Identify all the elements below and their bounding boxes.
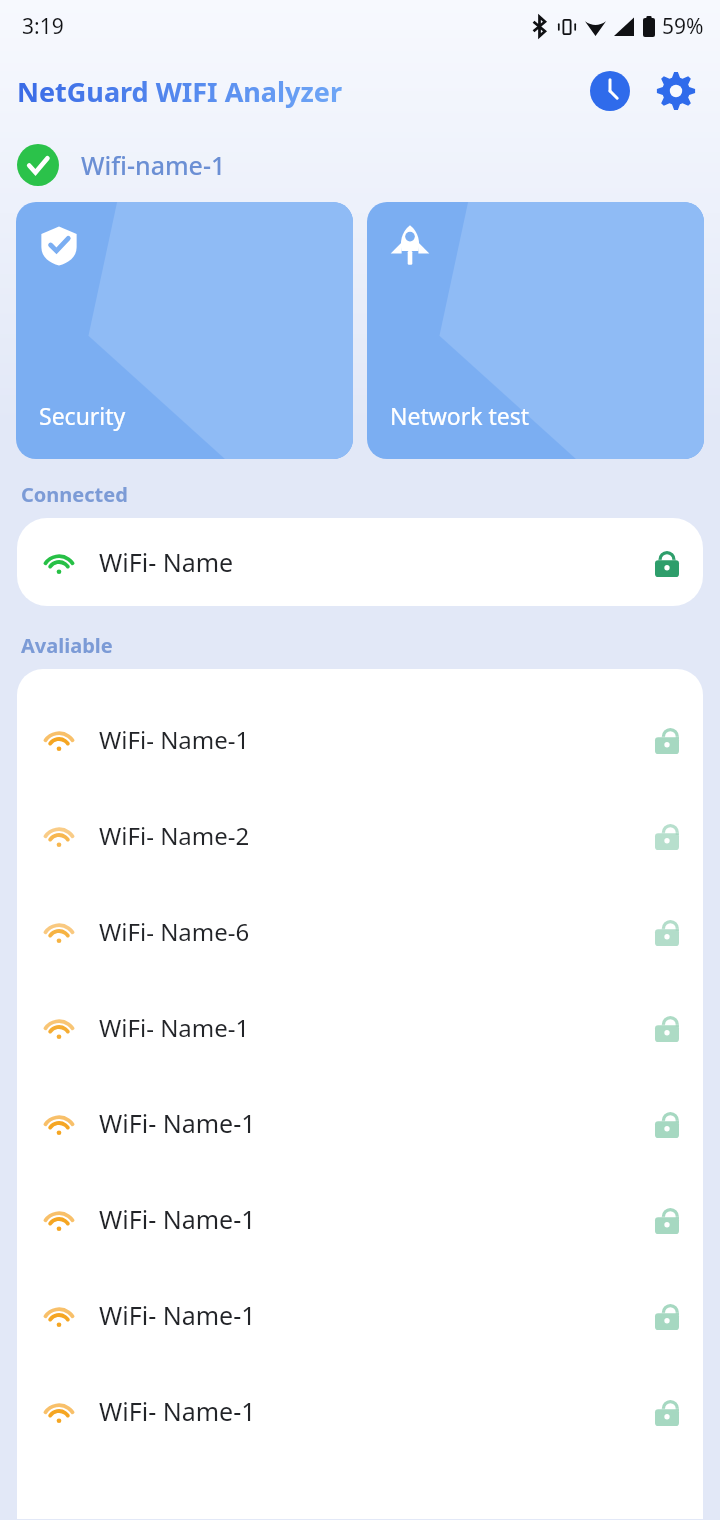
staticText: 59% — [662, 12, 704, 41]
button[interactable]: WiFi- Name-1 — [17, 1075, 703, 1171]
button[interactable]: WiFi- Name-1 — [17, 1363, 703, 1459]
staticText: Security — [39, 400, 126, 431]
button[interactable]: Security — [16, 202, 353, 459]
button[interactable]: WiFi- Name-2 — [17, 787, 703, 883]
button[interactable]: History — [584, 65, 636, 117]
staticText: WiFi- Name-1 — [99, 1106, 655, 1140]
staticText: 3:19 — [22, 12, 64, 41]
button[interactable]: Wifi-name-1 — [17, 144, 703, 186]
staticText: WiFi- Name-1 — [99, 1011, 655, 1044]
staticText: WiFi- Name-1 — [99, 723, 655, 756]
button[interactable]: WiFi- Name-6 — [17, 883, 703, 979]
button[interactable]: WiFi- Name — [17, 518, 703, 606]
staticText: WiFi- Name-1 — [99, 1202, 655, 1236]
button[interactable]: Settings — [650, 65, 702, 117]
button[interactable]: WiFi- Name-1 — [17, 979, 703, 1075]
staticText: Avaliable — [21, 632, 113, 659]
button[interactable]: WiFi- Name-1 — [17, 691, 703, 787]
staticText: WiFi- Name-1 — [99, 1394, 655, 1428]
button[interactable]: WiFi- Name-1 — [17, 1267, 703, 1363]
button[interactable]: WiFi- Name-1 — [17, 1171, 703, 1267]
staticText: Wifi-name-1 — [81, 148, 226, 182]
staticText: NetGuard WIFI Analyzer — [17, 73, 342, 110]
staticText: WiFi- Name-6 — [99, 915, 655, 948]
button[interactable]: Network test — [367, 202, 704, 459]
staticText: WiFi- Name-1 — [99, 1298, 655, 1332]
staticText: WiFi- Name — [99, 545, 655, 579]
staticText: WiFi- Name-2 — [99, 819, 655, 852]
staticText: Network test — [390, 400, 530, 431]
staticText: Connected — [21, 481, 128, 508]
